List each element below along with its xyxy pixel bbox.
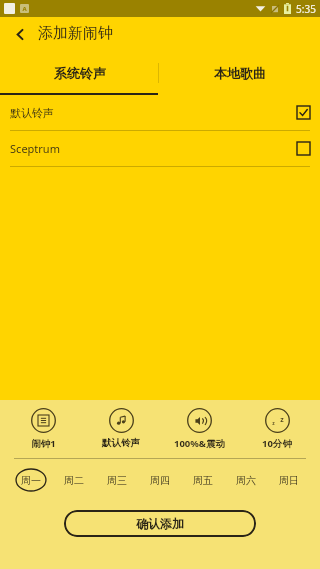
button[interactable]: 本地歌曲 <box>160 50 320 95</box>
staticText: 5:35 <box>296 2 316 16</box>
staticText: z <box>272 420 275 427</box>
staticText: 周一 <box>21 474 41 487</box>
staticText: 10分钟 <box>262 437 292 450</box>
staticText: 默认铃声 <box>10 106 54 120</box>
staticText: A <box>22 5 27 13</box>
button[interactable]: 确认添加 <box>64 510 256 537</box>
staticText: 周三 <box>107 474 127 487</box>
button[interactable]: Ringtone <box>86 408 156 449</box>
staticText: Sceptrum <box>10 141 60 156</box>
staticText: 默认铃声 <box>102 437 140 449</box>
staticText: 本地歌曲 <box>214 65 266 81</box>
staticText: 周六 <box>236 474 256 487</box>
staticText: 周日 <box>279 474 299 487</box>
staticText: 确认添加 <box>136 516 184 531</box>
staticText: 系统铃声 <box>54 65 106 81</box>
button[interactable]: Alarm name <box>8 408 78 450</box>
button[interactable]: 周三 <box>100 469 134 491</box>
staticText: 100%&震动 <box>174 437 225 450</box>
button[interactable]: 周六 <box>229 469 263 491</box>
button[interactable]: 系统铃声 <box>0 50 160 95</box>
button[interactable]: Sceptrum <box>0 131 320 166</box>
button[interactable]: 默认铃声 <box>0 95 320 130</box>
button[interactable]: 周一 <box>14 469 48 491</box>
button[interactable]: 周五 <box>186 469 220 491</box>
staticText: 闹钟1 <box>31 437 56 450</box>
button[interactable]: Snooze <box>242 408 312 450</box>
staticText: 周五 <box>193 474 213 487</box>
staticText: 周四 <box>150 474 170 487</box>
staticText: 添加新闹钟 <box>38 24 113 43</box>
button[interactable]: 周二 <box>57 469 91 491</box>
staticText: z <box>280 415 284 425</box>
button[interactable]: 周四 <box>143 469 177 491</box>
staticText: 周二 <box>64 474 84 487</box>
button[interactable]: Volume <box>164 408 234 450</box>
button[interactable]: 周日 <box>272 469 306 491</box>
button[interactable]: Back <box>8 22 32 46</box>
